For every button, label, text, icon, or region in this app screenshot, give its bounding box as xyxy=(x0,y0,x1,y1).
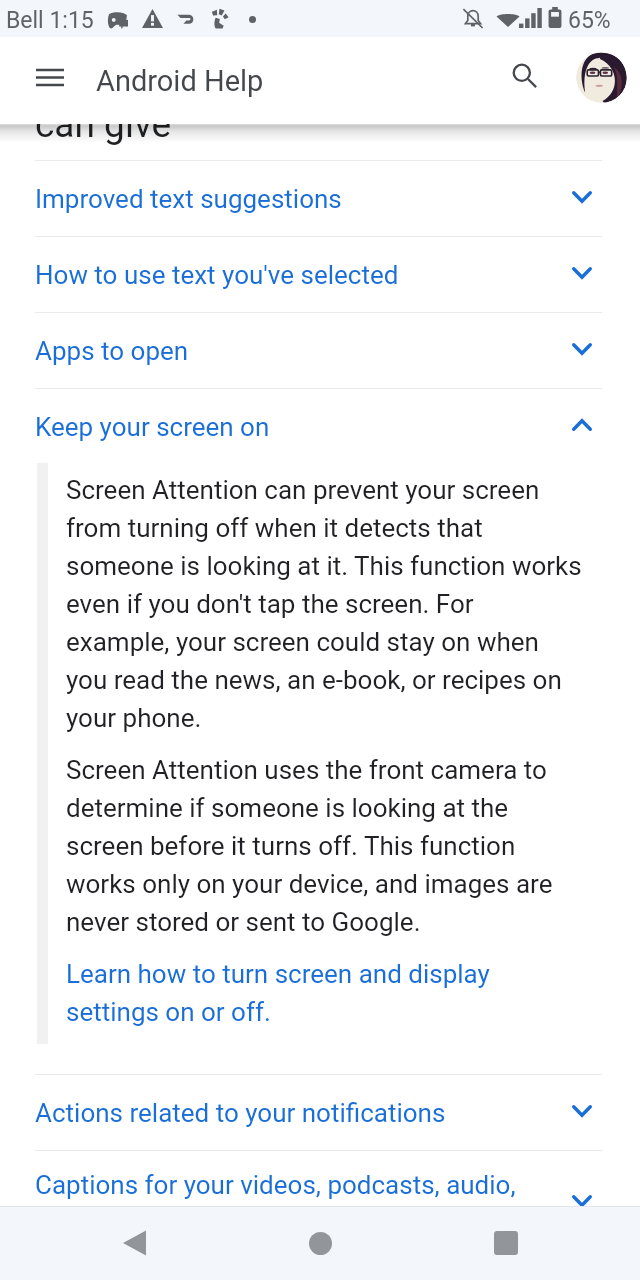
button[interactable]: Recent apps xyxy=(468,1206,544,1280)
staticText: Bell 1:15 xyxy=(6,7,94,34)
button[interactable]: Improved text suggestions xyxy=(0,161,640,236)
staticText: Learn how to turn screen and display set… xyxy=(66,959,582,1027)
button[interactable]: Back xyxy=(96,1206,172,1280)
button[interactable]: Actions related to your notifications xyxy=(0,1075,640,1150)
staticText: 65% xyxy=(568,7,611,34)
button[interactable]: Apps to open xyxy=(0,313,640,388)
staticText: Captions for your videos, podcasts, audi… xyxy=(35,1170,551,1238)
button[interactable]: Home xyxy=(282,1206,358,1280)
button[interactable]: How to use text you've selected xyxy=(0,237,640,312)
button[interactable]: Captions for your videos, podcasts, audi… xyxy=(0,1151,640,1271)
button[interactable]: Search xyxy=(500,51,551,102)
button[interactable]: Open navigation menu xyxy=(25,53,74,102)
staticText: can give xyxy=(35,103,172,146)
staticText: Improved text suggestions xyxy=(35,184,342,214)
staticText: Screen Attention uses the front camera t… xyxy=(66,755,582,937)
staticText: Android Help xyxy=(96,64,264,98)
staticText: Actions related to your notifications xyxy=(35,1098,446,1128)
staticText: Screen Attention can prevent your screen… xyxy=(66,475,582,733)
button[interactable]: Google Account xyxy=(576,52,627,103)
button[interactable]: Learn how to turn screen and display set… xyxy=(66,959,582,1027)
staticText: How to use text you've selected xyxy=(35,260,399,290)
button[interactable]: Keep your screen on xyxy=(0,389,640,464)
staticText: Keep your screen on xyxy=(35,412,270,442)
staticText: Apps to open xyxy=(35,336,189,366)
